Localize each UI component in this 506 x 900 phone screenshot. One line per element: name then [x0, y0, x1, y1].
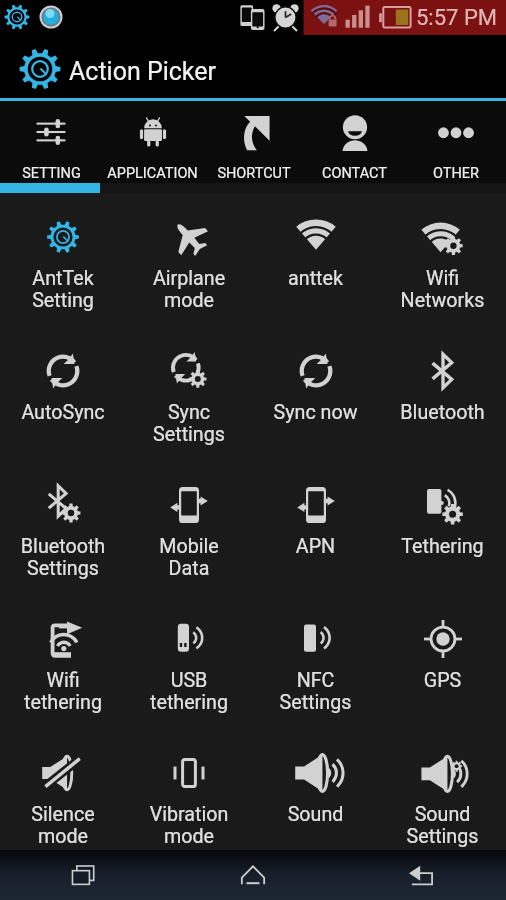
button[interactable]: Sync Settings: [126, 329, 252, 463]
button[interactable]: Airplane mode: [126, 195, 252, 329]
button[interactable]: Vibration mode: [126, 731, 252, 855]
button[interactable]: AutoSync: [0, 329, 126, 463]
button[interactable]: Wifi Networks: [379, 195, 506, 329]
staticText: GPS: [379, 669, 506, 692]
button[interactable]: Home: [168, 850, 337, 900]
button[interactable]: OTHER: [405, 101, 506, 183]
button[interactable]: SETTING: [0, 101, 102, 183]
button[interactable]: APN: [252, 463, 379, 597]
staticText: Sync Settings: [126, 401, 252, 445]
button[interactable]: Wifi tethering: [0, 597, 126, 731]
button[interactable]: Bluetooth: [379, 329, 506, 463]
staticText: AutoSync: [0, 401, 126, 424]
staticText: CONTACT: [322, 165, 387, 182]
button[interactable]: SHORTCUT: [203, 101, 304, 183]
staticText: APPLICATION: [107, 165, 198, 182]
button[interactable]: GPS: [379, 597, 506, 731]
button[interactable]: NFC Settings: [252, 597, 379, 731]
staticText: OTHER: [433, 165, 479, 182]
button[interactable]: Silence mode: [0, 731, 126, 855]
button[interactable]: Sound: [252, 731, 379, 855]
button[interactable]: Mobile Data: [126, 463, 252, 597]
staticText: SHORTCUT: [217, 165, 291, 182]
button[interactable]: Back: [337, 850, 506, 900]
staticText: SETTING: [22, 165, 81, 182]
staticText: APN: [252, 535, 379, 558]
staticText: Airplane mode: [126, 267, 252, 311]
staticText: NFC Settings: [252, 669, 379, 713]
button[interactable]: Sync now: [252, 329, 379, 463]
staticText: Tethering: [379, 535, 506, 558]
staticText: Sound: [252, 803, 379, 826]
staticText: AntTek Setting: [0, 267, 126, 311]
staticText: Bluetooth: [379, 401, 506, 424]
button[interactable]: Bluetooth Settings: [0, 463, 126, 597]
staticText: Action Picker: [69, 57, 217, 86]
staticText: Sync now: [252, 401, 379, 424]
button[interactable]: AntTek Setting: [0, 195, 126, 329]
staticText: Bluetooth Settings: [0, 535, 126, 579]
staticText: Vibration mode: [126, 803, 252, 847]
staticText: Silence mode: [0, 803, 126, 847]
button[interactable]: CONTACT: [304, 101, 405, 183]
staticText: anttek: [252, 267, 379, 290]
staticText: Wifi Networks: [379, 267, 506, 311]
staticText: Sound Settings: [379, 803, 506, 847]
button[interactable]: Tethering: [379, 463, 506, 597]
staticText: USB tethering: [126, 669, 252, 713]
button[interactable]: USB tethering: [126, 597, 252, 731]
button[interactable]: APPLICATION: [102, 101, 203, 183]
staticText: Mobile Data: [126, 535, 252, 579]
staticText: 5:57 PM: [416, 5, 497, 31]
button[interactable]: Sound Settings: [379, 731, 506, 855]
staticText: Wifi tethering: [0, 669, 126, 713]
button[interactable]: Recent apps: [0, 850, 168, 900]
button[interactable]: anttek: [252, 195, 379, 329]
